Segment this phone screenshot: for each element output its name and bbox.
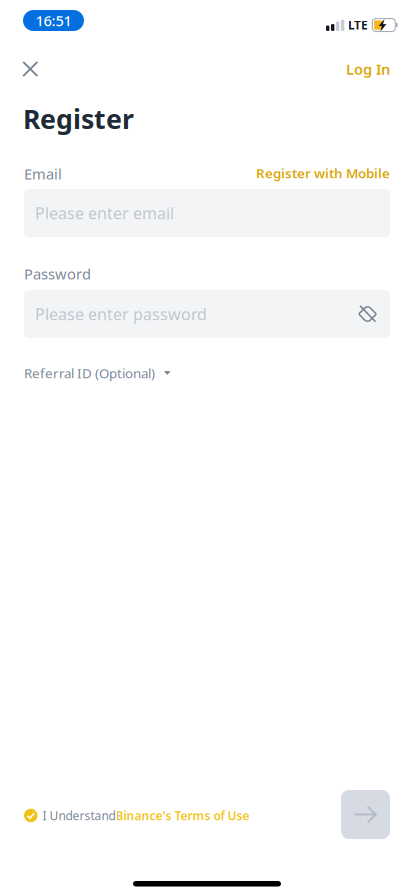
button[interactable]: Referral ID (Optional): [24, 362, 171, 384]
staticText: I Understand: [42, 807, 115, 823]
button[interactable]: Close: [8, 47, 52, 91]
staticText: Password: [24, 264, 91, 283]
staticText: Email: [24, 164, 62, 183]
staticText: Binance's Terms of Use: [115, 807, 249, 823]
button[interactable]: I Understand: [24, 804, 249, 826]
staticText: Register with Mobile: [256, 164, 390, 182]
button[interactable]: Next: [341, 790, 390, 839]
staticText: Please enter email: [35, 202, 174, 224]
button[interactable]: Register with Mobile: [250, 164, 390, 182]
staticText: Referral ID (Optional): [24, 364, 155, 382]
button[interactable]: Log In: [324, 47, 390, 91]
staticText: Please enter password: [35, 303, 207, 325]
staticText: Register: [23, 101, 134, 136]
staticText: 16:51: [35, 11, 71, 30]
staticText: Log In: [346, 59, 390, 79]
button[interactable]: Show password: [358, 305, 377, 323]
staticText: LTE: [348, 17, 368, 33]
